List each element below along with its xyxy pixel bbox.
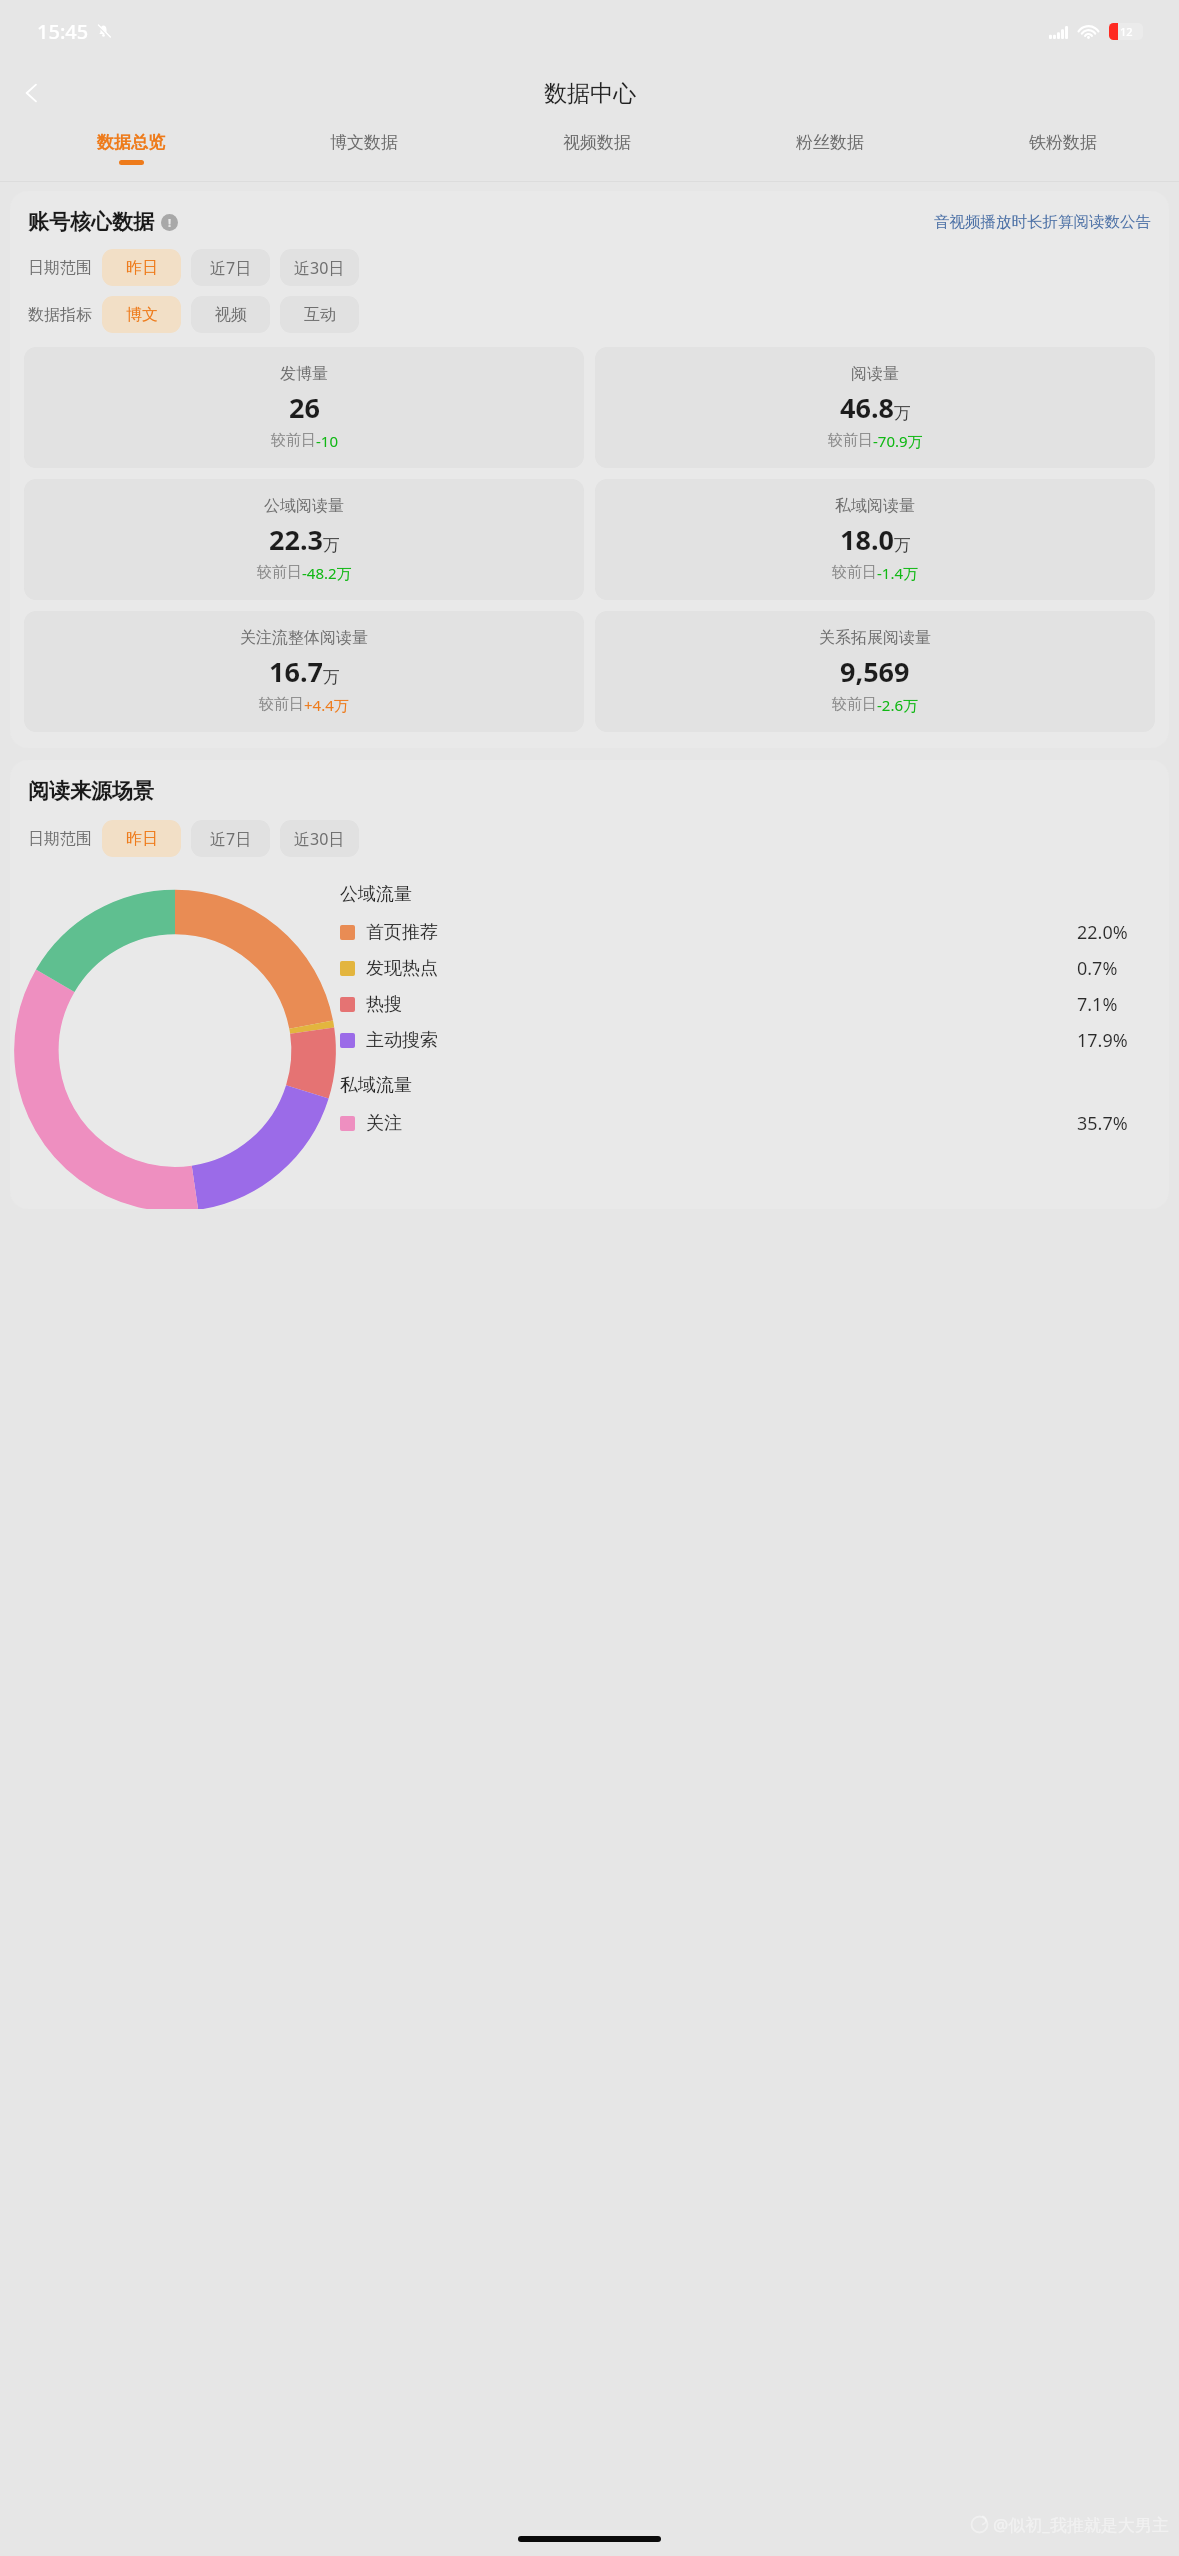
staticText: 15:45 [37,18,89,45]
staticText: 关系拓展阅读量 [819,628,931,648]
staticText: 0.7% [1077,956,1118,981]
staticText: 万 [323,535,340,556]
staticText: 阅读来源场景 [28,778,154,804]
staticText: -48.2万 [302,563,352,583]
staticText: 关注流整体阅读量 [240,628,368,648]
button[interactable]: 发博量 [24,347,584,468]
staticText: 数据总览 [97,132,165,153]
staticText: 较前日 [271,431,316,450]
staticText: 关注 [366,1112,402,1135]
staticText: 热搜 [366,993,402,1016]
button[interactable]: 发现热点 [340,950,1169,986]
button[interactable]: Info [161,214,178,231]
staticText: 公域流量 [340,883,412,906]
staticText: 发现热点 [366,957,438,980]
staticText: 18.0 [840,521,894,558]
staticText: 账号核心数据 [28,209,154,235]
button[interactable]: 近7日 [191,820,270,857]
button[interactable]: Back [8,69,56,117]
staticText: 26 [289,389,320,426]
staticText: 35.7% [1077,1111,1128,1136]
button[interactable]: 铁粉数据 [946,124,1179,182]
button[interactable]: 博文 [102,296,181,333]
staticText: 主动搜索 [366,1029,438,1052]
staticText: 近7日 [210,257,252,279]
staticText: @似初_我推就是大男主 [993,2513,1169,2536]
staticText: 昨日 [126,829,158,849]
button[interactable]: 私域阅读量 [595,479,1155,600]
staticText: ! [168,215,172,230]
staticText: 阅读量 [851,364,899,384]
staticText: 公域阅读量 [264,496,344,516]
staticText: 9,569 [840,653,910,690]
button[interactable]: 粉丝数据 [713,124,946,182]
button[interactable]: 博文数据 [247,124,480,182]
button[interactable]: 阅读量 [595,347,1155,468]
staticText: 私域流量 [340,1074,412,1097]
button[interactable]: 近30日 [280,820,359,857]
staticText: 近30日 [294,257,345,279]
button[interactable]: 公域阅读量 [24,479,584,600]
staticText: 铁粉数据 [1029,132,1097,153]
staticText: 日期范围 [28,258,92,278]
staticText: -2.6万 [877,695,919,715]
staticText: 万 [323,667,340,688]
staticText: 较前日 [832,563,877,582]
staticText: 音视频播放时长折算阅读数公告 [934,212,1151,232]
staticText: 私域阅读量 [835,496,915,516]
button[interactable]: 昨日 [102,249,181,286]
staticText: 粉丝数据 [796,132,864,153]
staticText: 万 [894,403,911,424]
button[interactable]: 视频 [191,296,270,333]
staticText: 近7日 [210,828,252,850]
button[interactable]: 热搜 [340,986,1169,1022]
staticText: 16.7 [269,653,323,690]
staticText: 视频 [215,305,247,325]
button[interactable]: 视频数据 [480,124,713,182]
staticText: 博文 [126,305,158,325]
staticText: -10 [316,431,338,451]
staticText: -70.9万 [873,431,923,451]
staticText: 较前日 [832,695,877,714]
button[interactable]: 数据总览 [14,124,247,182]
button[interactable]: 近7日 [191,249,270,286]
staticText: 昨日 [126,258,158,278]
staticText: 数据指标 [28,305,92,325]
staticText: 首页推荐 [366,921,438,944]
staticText: 视频数据 [563,132,631,153]
staticText: 日期范围 [28,829,92,849]
button[interactable]: 主动搜索 [340,1022,1169,1058]
staticText: 17.9% [1077,1028,1128,1053]
button[interactable]: 首页推荐 [340,914,1169,950]
staticText: 发博量 [280,364,328,384]
button[interactable]: 昨日 [102,820,181,857]
button[interactable]: 互动 [280,296,359,333]
staticText: 7.1% [1077,992,1118,1017]
staticText: 较前日 [257,563,302,582]
staticText: 近30日 [294,828,345,850]
staticText: 46.8 [840,389,894,426]
staticText: -1.4万 [877,563,919,583]
staticText: +4.4万 [304,695,349,715]
staticText: 较前日 [259,695,304,714]
staticText: 22.3 [269,521,323,558]
button[interactable]: 音视频播放时长折算阅读数公告 [934,212,1151,232]
staticText: 22.0% [1077,920,1128,945]
staticText: 较前日 [828,431,873,450]
button[interactable]: 关注流整体阅读量 [24,611,584,732]
staticText: 数据中心 [544,79,636,108]
staticText: 12 [1120,24,1133,39]
staticText: 博文数据 [330,132,398,153]
button[interactable]: 近30日 [280,249,359,286]
button[interactable]: 关系拓展阅读量 [595,611,1155,732]
button[interactable]: 关注 [340,1105,1169,1141]
staticText: 万 [894,535,911,556]
staticText: 互动 [304,305,336,325]
